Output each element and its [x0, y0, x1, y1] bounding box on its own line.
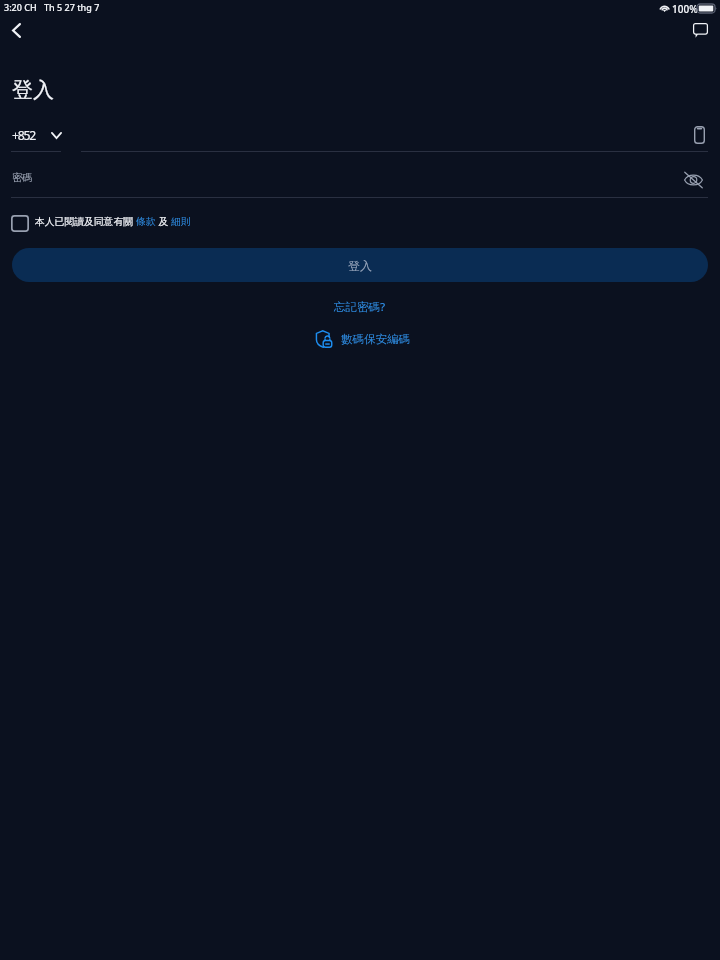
button[interactable]: I have read and agree to the terms: [11, 215, 29, 232]
button[interactable]: 忘記密碼?: [0, 296, 720, 318]
button[interactable]: Password: [11, 168, 671, 196]
staticText: 忘記密碼?: [334, 299, 386, 315]
button[interactable]: 條款: [136, 216, 156, 228]
button[interactable]: 數碼保安編碼: [2, 327, 720, 351]
staticText: 密碼: [12, 171, 32, 184]
button[interactable]: Back: [0, 14, 32, 46]
button[interactable]: 登入: [12, 248, 708, 282]
staticText: 登入: [12, 77, 54, 103]
staticText: 本人已閱讀及同意有關: [35, 215, 136, 228]
button[interactable]: 細則: [171, 216, 191, 228]
button[interactable]: Select country calling code, +852: [11, 124, 63, 146]
staticText: 及: [156, 215, 171, 228]
button[interactable]: Show password: [678, 166, 708, 194]
staticText: Th 5 27 thg 7: [44, 1, 100, 13]
staticText: 100%: [672, 2, 698, 16]
staticText: +852: [12, 127, 36, 144]
staticText: 3:20 CH: [4, 1, 37, 13]
button[interactable]: Live chat support: [684, 14, 716, 46]
staticText: 數碼保安編碼: [341, 332, 410, 346]
staticText: 登入: [348, 258, 372, 273]
